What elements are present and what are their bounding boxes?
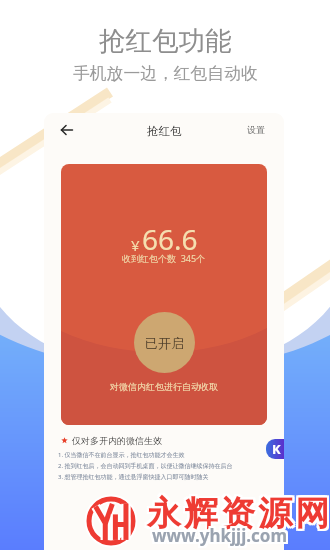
staticText: 永辉资源网 bbox=[145, 494, 330, 537]
staticText: www.yhkjjj.com bbox=[154, 522, 289, 545]
staticText: 2. 抢到红包后，会自动回到手机桌面，以便让微信继续保持在后台 bbox=[58, 462, 233, 470]
button[interactable]: 已开启 bbox=[134, 312, 195, 373]
staticText: www.yhkjjj.com bbox=[154, 526, 289, 549]
staticText: www.yhkjjj.com bbox=[154, 524, 289, 547]
staticText: www.yhkjjj.com bbox=[150, 526, 285, 549]
staticText: 永辉资源网 bbox=[147, 490, 330, 533]
button[interactable]: KeepAlive shortcut bbox=[266, 439, 284, 459]
staticText: 仅对多开内的微信生效 bbox=[72, 435, 162, 446]
staticText: 永辉资源网 bbox=[145, 492, 330, 535]
staticText: ¥ bbox=[131, 235, 140, 255]
staticText: 手机放一边，红包自动收 bbox=[73, 63, 258, 84]
staticText: 已开启 bbox=[145, 335, 184, 351]
staticText: 66.6 bbox=[142, 220, 198, 258]
staticText: 抢红包 bbox=[147, 124, 182, 138]
staticText: www.yhkjjj.com bbox=[152, 526, 287, 549]
button[interactable]: 设置 bbox=[247, 124, 265, 135]
staticText: K bbox=[272, 440, 281, 458]
staticText: www.yhkjjj.com bbox=[152, 524, 287, 547]
staticText: 3. 想管理抢红包功能，通过悬浮窗快捷入口即可随时随关 bbox=[58, 473, 209, 481]
staticText: 永辉资源网 bbox=[147, 494, 330, 537]
staticText: www.yhkjjj.com bbox=[150, 522, 285, 545]
staticText: 设置 bbox=[247, 124, 265, 135]
staticText: 1. 仅当微信不在前台显示，抢红包功能才会生效 bbox=[58, 451, 185, 459]
staticText: 永辉资源网 bbox=[149, 494, 330, 537]
staticText: 永辉资源网 bbox=[149, 492, 330, 535]
staticText: 永辉资源网 bbox=[147, 492, 330, 535]
staticText: 永辉资源网 bbox=[149, 490, 330, 533]
staticText: 对微信内红包进行自动收取 bbox=[110, 381, 218, 392]
staticText: www.yhkjjj.com bbox=[150, 524, 285, 547]
staticText: 永辉资源网 bbox=[145, 490, 330, 533]
staticText: 抢红包功能 bbox=[99, 24, 232, 57]
staticText: www.yhkjjj.com bbox=[152, 522, 287, 545]
staticText: 收到红包个数 345个 bbox=[122, 252, 206, 264]
button[interactable]: Back bbox=[56, 119, 78, 141]
